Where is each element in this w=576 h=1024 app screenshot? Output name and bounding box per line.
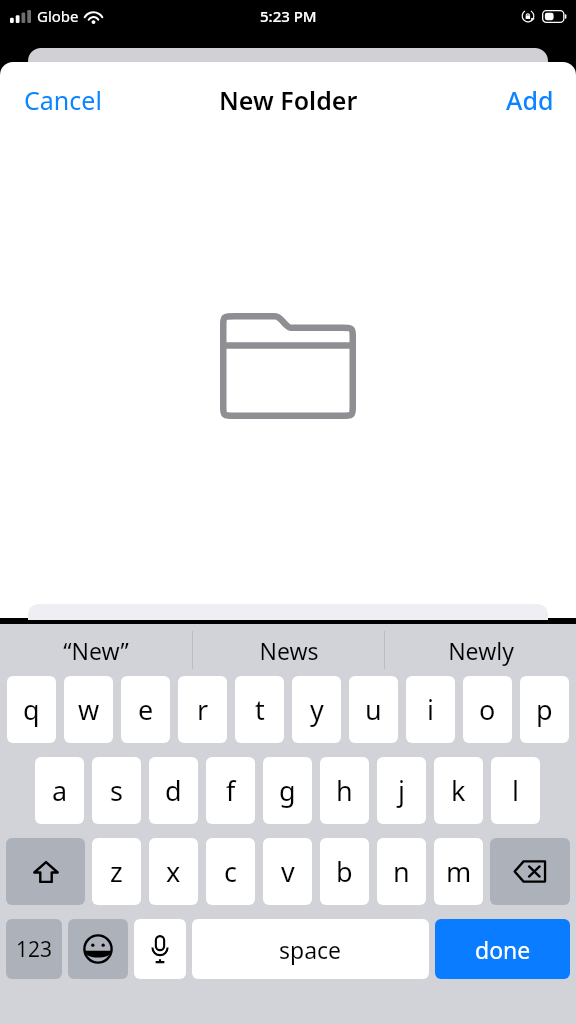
button[interactable]: Dictation	[134, 919, 186, 979]
staticText: h	[336, 772, 353, 809]
staticText: x	[166, 853, 181, 890]
staticText: k	[451, 772, 466, 809]
staticText: m	[446, 853, 472, 890]
staticText: z	[110, 853, 123, 890]
button[interactable]: Emoji	[68, 919, 128, 979]
button[interactable]: y	[292, 676, 341, 743]
staticText: l	[512, 772, 519, 809]
button[interactable]: p	[520, 676, 569, 743]
staticText: News	[259, 635, 319, 666]
staticText: g	[279, 772, 296, 809]
staticText: n	[393, 853, 410, 890]
staticText: 123	[16, 935, 53, 964]
button[interactable]: t	[235, 676, 284, 743]
staticText: space	[279, 934, 342, 965]
button[interactable]: w	[64, 676, 113, 743]
button[interactable]: space	[192, 919, 429, 979]
staticText: Add	[506, 83, 554, 117]
staticText: New Folder	[219, 83, 358, 117]
staticText: f	[226, 772, 236, 809]
button[interactable]: b	[320, 838, 369, 905]
button[interactable]: Shift	[6, 838, 85, 905]
staticText: d	[165, 772, 182, 809]
staticText: “New”	[63, 635, 129, 666]
button[interactable]: f	[206, 757, 255, 824]
button[interactable]: v	[263, 838, 312, 905]
staticText: o	[479, 691, 496, 728]
button[interactable]: 123	[6, 919, 62, 979]
staticText: b	[336, 853, 353, 890]
staticText: y	[310, 691, 324, 728]
staticText: e	[138, 691, 154, 728]
button[interactable]: n	[377, 838, 426, 905]
staticText: c	[224, 853, 237, 890]
staticText: p	[536, 691, 553, 728]
button[interactable]: q	[7, 676, 56, 743]
button[interactable]: News	[193, 624, 384, 676]
button[interactable]: Add	[484, 69, 576, 131]
button[interactable]: a	[35, 757, 84, 824]
button[interactable]: h	[320, 757, 369, 824]
staticText: s	[110, 772, 123, 809]
staticText: done	[475, 934, 531, 965]
staticText: 5:23 PM	[260, 6, 317, 26]
button[interactable]: d	[149, 757, 198, 824]
staticText: Globe	[37, 6, 79, 26]
button[interactable]: done	[435, 919, 570, 979]
button[interactable]: Backspace	[490, 838, 570, 905]
staticText: i	[427, 691, 434, 728]
button[interactable]: o	[463, 676, 512, 743]
button[interactable]: z	[92, 838, 141, 905]
button[interactable]: “New”	[0, 624, 192, 676]
staticText: Newly	[448, 635, 514, 666]
button[interactable]: e	[121, 676, 170, 743]
button[interactable]: i	[406, 676, 455, 743]
staticText: a	[52, 772, 68, 809]
staticText: q	[23, 691, 40, 728]
button[interactable]: Newly	[385, 624, 576, 676]
button[interactable]: g	[263, 757, 312, 824]
button[interactable]: c	[206, 838, 255, 905]
staticText: u	[365, 691, 382, 728]
staticText: j	[398, 772, 405, 809]
button[interactable]: s	[92, 757, 141, 824]
staticText: t	[255, 691, 265, 728]
staticText: r	[197, 691, 209, 728]
button[interactable]: u	[349, 676, 398, 743]
button[interactable]: l	[491, 757, 540, 824]
button[interactable]: x	[149, 838, 198, 905]
button[interactable]: k	[434, 757, 483, 824]
staticText: v	[281, 853, 295, 890]
staticText: Cancel	[24, 83, 102, 117]
button[interactable]: r	[178, 676, 227, 743]
button[interactable]: j	[377, 757, 426, 824]
staticText: w	[78, 691, 100, 728]
button[interactable]: Cancel	[0, 69, 126, 131]
button[interactable]: m	[434, 838, 483, 905]
